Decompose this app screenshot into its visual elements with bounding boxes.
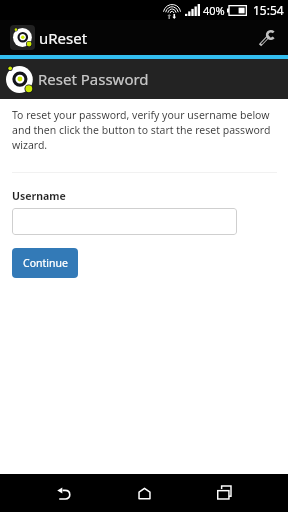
staticText: uReset	[39, 28, 88, 48]
staticText: 15:54	[253, 2, 284, 18]
button[interactable]: Settings	[253, 20, 288, 55]
staticText: Continue	[23, 256, 68, 270]
staticText: To reset your password, verify your user…	[12, 108, 277, 152]
button[interactable]	[12, 208, 237, 235]
button[interactable]: Recents	[203, 474, 245, 512]
button[interactable]: Home	[123, 474, 165, 512]
staticText: Reset Password	[38, 69, 149, 89]
button[interactable]: Continue	[12, 248, 78, 278]
button[interactable]: Back	[42, 474, 84, 512]
staticText: 40%	[203, 3, 225, 18]
staticText: Username	[12, 189, 66, 203]
